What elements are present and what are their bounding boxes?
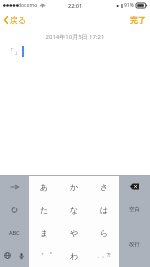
button[interactable]: は [89, 198, 119, 221]
staticText: 完了 [130, 15, 146, 25]
button[interactable]: さ [89, 175, 119, 198]
button[interactable]: Space [119, 198, 150, 221]
button[interactable]: Undo [0, 198, 29, 221]
staticText: 「」 [7, 47, 21, 56]
button[interactable]: ら [89, 221, 119, 244]
button[interactable]: ABC [0, 221, 29, 244]
button[interactable]: Next [0, 175, 29, 198]
staticText: ら [100, 228, 109, 238]
staticText: 改行 [129, 241, 140, 248]
staticText: は [100, 205, 109, 215]
button[interactable]: わ [59, 244, 89, 267]
staticText: さ [100, 182, 109, 192]
button[interactable]: ま [29, 221, 59, 244]
staticText: ま [40, 228, 49, 238]
button[interactable]: Language [0, 244, 14, 267]
button[interactable]: Delete [119, 175, 150, 198]
button[interactable]: あ [29, 175, 59, 198]
staticText: 空白 [129, 206, 140, 213]
staticText: 91% [124, 2, 134, 9]
staticText: ABC [9, 229, 20, 236]
staticText: や [70, 228, 79, 238]
staticText: 22:01 [68, 2, 83, 9]
button[interactable]: ゛゜ [29, 244, 59, 267]
staticText: ゛゜ [36, 251, 53, 261]
button[interactable]: か [59, 175, 89, 198]
staticText: な [70, 205, 79, 215]
staticText: あ [40, 182, 49, 192]
staticText: わ [70, 251, 79, 261]
button[interactable]: や [59, 221, 89, 244]
button[interactable]: 完了 [124, 12, 150, 28]
staticText: 2014年10月5日 17:21 [0, 33, 150, 41]
button[interactable]: 、。?! [89, 244, 119, 267]
staticText: か [70, 182, 79, 192]
button[interactable]: 戻る [0, 12, 33, 28]
button[interactable]: た [29, 198, 59, 221]
staticText: た [40, 205, 49, 215]
button[interactable]: Dictation [14, 244, 29, 267]
button[interactable]: Return [119, 221, 150, 267]
staticText: 戻る [10, 15, 27, 25]
button[interactable]: な [59, 198, 89, 221]
staticText: 、。?! [97, 252, 111, 259]
staticText: docomo [18, 2, 38, 9]
